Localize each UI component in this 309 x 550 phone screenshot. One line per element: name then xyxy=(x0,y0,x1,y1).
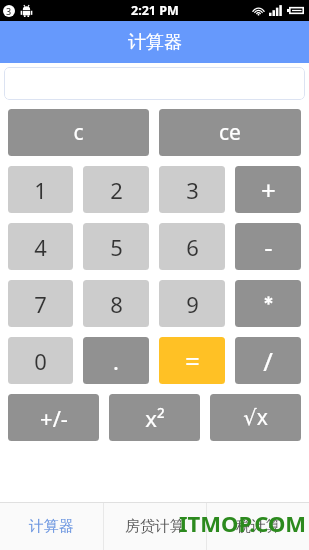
button[interactable]: 7 xyxy=(8,280,73,327)
staticText: 计算器 xyxy=(29,517,74,536)
staticText: √x xyxy=(243,403,268,432)
staticText: c xyxy=(73,118,84,147)
staticText: 5 xyxy=(110,232,123,262)
button[interactable]: 计算器 xyxy=(0,503,103,550)
button[interactable]: 9 xyxy=(159,280,225,327)
button[interactable]: +/- xyxy=(8,394,99,441)
button[interactable]: 6 xyxy=(159,223,225,270)
button[interactable]: 2 xyxy=(83,166,149,213)
button[interactable]: 1 xyxy=(8,166,73,213)
button[interactable]: √x xyxy=(210,394,301,441)
staticText: . xyxy=(113,346,119,376)
staticText: ce xyxy=(219,118,241,147)
staticText: 9 xyxy=(186,289,199,319)
staticText: = xyxy=(185,343,200,378)
button[interactable]: 0 xyxy=(8,337,73,384)
button[interactable]: ce xyxy=(159,109,301,156)
button[interactable]: / xyxy=(235,337,301,384)
button[interactable]: - xyxy=(235,223,301,270)
button[interactable]: multiply xyxy=(235,280,301,327)
button[interactable]: 税计算 xyxy=(207,503,309,550)
button[interactable]: 4 xyxy=(8,223,73,270)
staticText: 计算器 xyxy=(128,31,182,54)
staticText: 房贷计算 xyxy=(125,517,185,536)
button[interactable]: 5 xyxy=(83,223,149,270)
staticText: 3 xyxy=(186,175,199,205)
staticText: 2:21 PM xyxy=(131,2,179,19)
button[interactable]: . xyxy=(83,337,149,384)
staticText: 7 xyxy=(34,289,47,319)
staticText: + xyxy=(261,172,276,207)
button[interactable]: x² xyxy=(109,394,200,441)
staticText: 3 xyxy=(6,5,12,17)
button[interactable] xyxy=(4,67,305,100)
staticText: - xyxy=(264,229,273,264)
button[interactable]: + xyxy=(235,166,301,213)
button[interactable]: 房贷计算 xyxy=(104,503,206,550)
staticText: +/- xyxy=(40,403,68,433)
button[interactable]: = xyxy=(159,337,225,384)
staticText: 4 xyxy=(34,232,47,262)
staticText: ITMOP.COM xyxy=(179,508,307,538)
staticText: 2 xyxy=(110,175,123,205)
staticText: x² xyxy=(145,403,165,433)
staticText: 6 xyxy=(186,232,199,262)
staticText: 税计算 xyxy=(236,517,281,536)
staticText: 1 xyxy=(34,175,47,205)
staticText: 0 xyxy=(34,346,47,376)
button[interactable]: 3 xyxy=(159,166,225,213)
button[interactable]: c xyxy=(8,109,149,156)
button[interactable]: 8 xyxy=(83,280,149,327)
staticText: 8 xyxy=(110,289,123,319)
staticText: / xyxy=(263,343,273,378)
